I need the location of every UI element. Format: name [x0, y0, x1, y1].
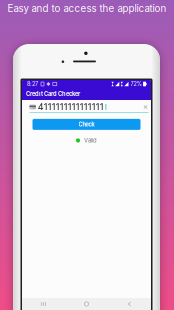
- staticText: 8:27: [27, 81, 38, 87]
- staticText: Easy and to access the application: [7, 3, 166, 14]
- staticText: 72%: [130, 81, 141, 87]
- button[interactable]: Recent apps: [22, 298, 65, 310]
- button[interactable]: Check: [32, 119, 140, 130]
- staticText: Check: [78, 121, 94, 128]
- staticText: Credit Card Checker: [26, 90, 80, 97]
- button[interactable]: Home: [65, 298, 108, 310]
- staticText: 4111111111111111: [38, 101, 104, 112]
- button[interactable]: Back: [108, 298, 151, 310]
- staticText: Valid: [84, 137, 97, 144]
- button[interactable]: Clear: [142, 104, 148, 110]
